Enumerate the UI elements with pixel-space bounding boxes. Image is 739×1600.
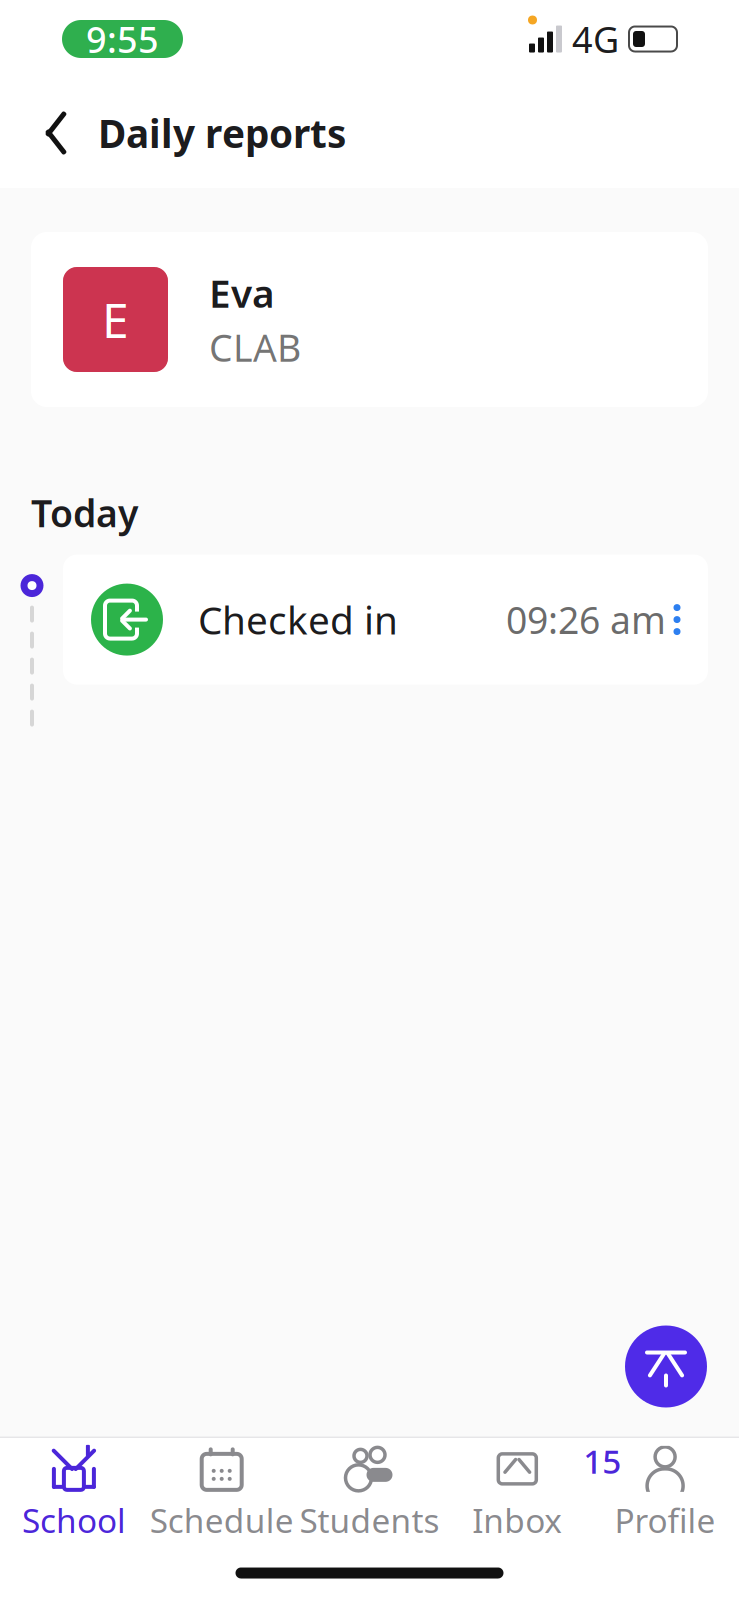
staticText: 4G [572, 15, 619, 63]
staticText: Schedule [150, 1498, 294, 1542]
staticText: Today [31, 488, 138, 538]
staticText: Inbox [472, 1498, 562, 1542]
button[interactable]: E [31, 232, 708, 407]
staticText: Checked in [198, 594, 398, 645]
button[interactable]: Schedule [148, 1432, 296, 1552]
staticText: CLAB [209, 322, 301, 372]
button[interactable]: School [0, 1432, 148, 1552]
button[interactable]: Profile [591, 1432, 739, 1552]
staticText: 15 [583, 1439, 621, 1483]
staticText: 09:26 am [506, 595, 666, 644]
button[interactable]: Back [30, 103, 82, 163]
staticText: Eva [209, 267, 275, 318]
staticText: School [22, 1498, 126, 1542]
staticText: E [102, 288, 129, 351]
staticText: 9:55 [86, 15, 159, 63]
staticText: Students [299, 1498, 439, 1542]
button[interactable]: Filter [625, 1325, 707, 1407]
button[interactable]: Students [296, 1432, 443, 1552]
staticText: Daily reports [98, 107, 346, 159]
staticText: Profile [615, 1498, 716, 1542]
button[interactable]: 15 [443, 1432, 591, 1552]
button[interactable]: Checked in [63, 555, 708, 685]
